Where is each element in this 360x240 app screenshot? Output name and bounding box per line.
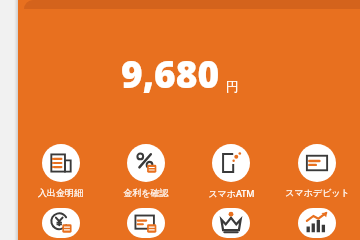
staticText: 円: [226, 78, 239, 94]
button[interactable]: Shortcut: [18, 206, 103, 240]
staticText: スマホデビット: [285, 187, 350, 198]
button[interactable]: スマホATM: [188, 142, 274, 201]
button[interactable]: 金利を確認: [103, 142, 188, 200]
button[interactable]: Shortcut: [188, 206, 274, 240]
button[interactable]: Shortcut: [103, 206, 188, 240]
button[interactable]: スマホデビット: [274, 142, 360, 200]
staticText: 9,680: [121, 48, 220, 98]
staticText: スマホATM: [208, 187, 255, 199]
staticText: 金利を確認: [123, 187, 169, 198]
button[interactable]: Shortcut: [274, 206, 360, 240]
button[interactable]: 入出金明細: [18, 142, 103, 200]
staticText: 入出金明細: [38, 187, 83, 198]
